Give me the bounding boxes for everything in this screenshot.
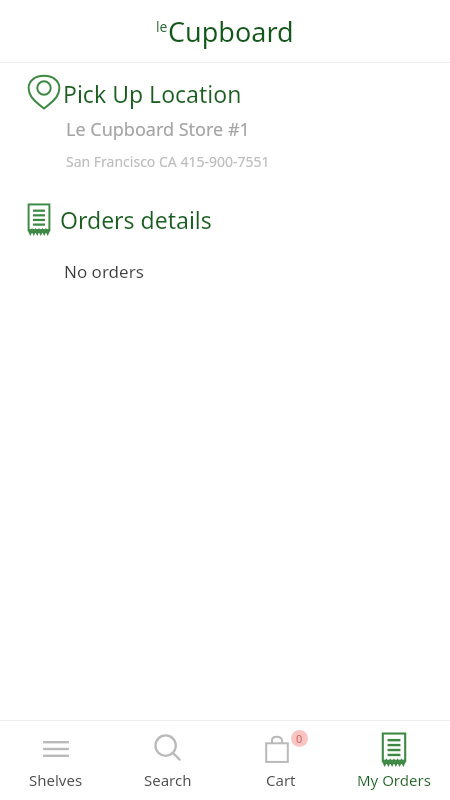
- staticText: San Francisco CA 415-900-7551: [66, 152, 270, 171]
- other: Location: [26, 75, 62, 111]
- staticText: Le Cupboard Store #1: [66, 117, 250, 142]
- button[interactable]: Location: [0, 75, 450, 111]
- staticText: 0: [296, 731, 303, 746]
- button[interactable]: Shelves: [0, 721, 112, 800]
- staticText: le: [156, 17, 168, 36]
- button[interactable]: Cart: [224, 721, 337, 800]
- staticText: Pick Up Location: [63, 78, 242, 109]
- button[interactable]: Orders: [337, 721, 450, 800]
- other: Shelves: [39, 732, 73, 766]
- button[interactable]: Orders: [0, 203, 450, 235]
- staticText: Shelves: [29, 770, 83, 790]
- other: Cart: [261, 730, 301, 768]
- button[interactable]: Search: [112, 721, 224, 800]
- staticText: Cupboard: [168, 13, 294, 50]
- staticText: Orders details: [60, 204, 212, 235]
- staticText: No orders: [64, 260, 144, 283]
- other: Orders: [380, 732, 408, 766]
- staticText: My Orders: [357, 770, 431, 790]
- other: Search: [151, 732, 185, 766]
- staticText: Cart: [266, 770, 296, 790]
- staticText: Search: [144, 770, 192, 790]
- other: Orders: [26, 203, 52, 235]
